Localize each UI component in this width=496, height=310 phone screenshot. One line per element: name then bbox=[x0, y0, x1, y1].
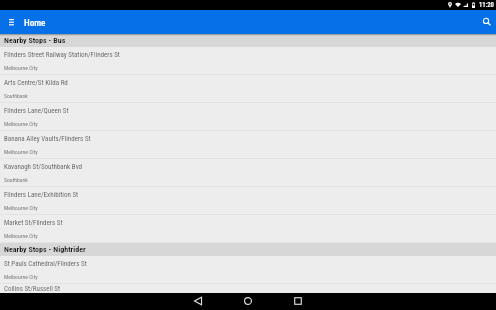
staticText: Arts Centre/St Kilda Rd bbox=[4, 79, 68, 87]
staticText: Melbourne City bbox=[4, 121, 38, 128]
staticText: Melbourne City bbox=[4, 233, 38, 240]
staticText: 11:20 bbox=[479, 1, 494, 9]
staticText: Kavanagh St/Southbank Bvd bbox=[4, 163, 83, 171]
button[interactable]: Flinders Lane/Exhibition St bbox=[0, 187, 496, 215]
button[interactable]: Open navigation drawer bbox=[2, 10, 20, 34]
button[interactable]: Search bbox=[478, 10, 496, 34]
staticText: Melbourne City bbox=[4, 205, 38, 212]
button[interactable]: Back bbox=[180, 293, 216, 310]
button[interactable]: Flinders Street Railway Station/Flinders… bbox=[0, 47, 496, 75]
staticText: Home bbox=[24, 17, 46, 28]
staticText: Nearby Stops - Bus bbox=[4, 36, 66, 45]
button[interactable]: Arts Centre/St Kilda Rd bbox=[0, 75, 496, 103]
button[interactable]: Flinders Lane/Queen St bbox=[0, 103, 496, 131]
staticText: Flinders Lane/Exhibition St bbox=[4, 191, 79, 199]
staticText: Nearby Stops - Nightrider bbox=[4, 245, 86, 254]
button[interactable]: Kavanagh St/Southbank Bvd bbox=[0, 159, 496, 187]
staticText: Collins St/Russell St bbox=[4, 285, 61, 293]
staticText: Banana Alley Vaults/Flinders St bbox=[4, 135, 91, 143]
staticText: St Pauls Cathedral/Flinders St bbox=[4, 260, 87, 268]
button[interactable]: Collins St/Russell St bbox=[0, 284, 496, 293]
staticText: Melbourne City bbox=[4, 149, 38, 156]
staticText: Melbourne City bbox=[4, 274, 38, 281]
staticText: Southbank bbox=[4, 177, 28, 184]
button[interactable]: Banana Alley Vaults/Flinders St bbox=[0, 131, 496, 159]
staticText: Flinders Street Railway Station/Flinders… bbox=[4, 51, 120, 59]
button[interactable]: Home bbox=[230, 293, 266, 310]
button[interactable]: Market St/Flinders St bbox=[0, 215, 496, 243]
staticText: Flinders Lane/Queen St bbox=[4, 107, 69, 115]
button[interactable]: Recent apps bbox=[280, 293, 316, 310]
staticText: Southbank bbox=[4, 93, 28, 100]
staticText: Market St/Flinders St bbox=[4, 219, 63, 227]
staticText: Melbourne City bbox=[4, 65, 38, 72]
button[interactable]: St Pauls Cathedral/Flinders St bbox=[0, 256, 496, 284]
